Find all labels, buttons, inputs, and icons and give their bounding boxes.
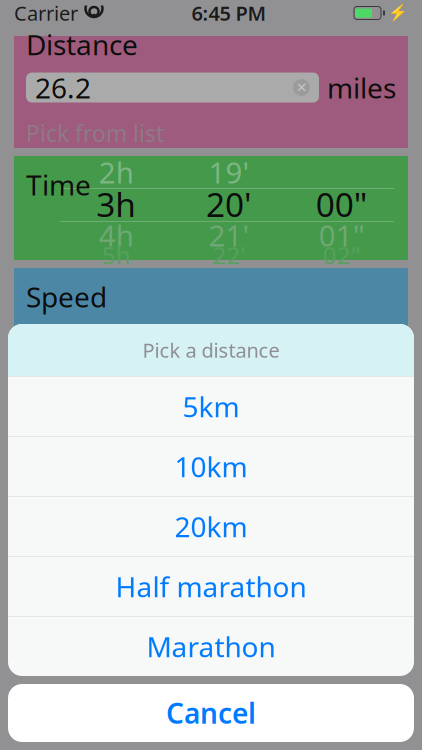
staticText: 21'	[208, 215, 249, 254]
staticText: 2h	[99, 152, 134, 191]
staticText: Pick a distance	[142, 337, 279, 363]
staticText: Speed	[26, 278, 107, 315]
staticText: Time	[26, 166, 91, 203]
staticText: 02"	[323, 239, 361, 271]
button[interactable]: Pick from list	[14, 106, 164, 160]
staticText: 4h	[99, 215, 134, 254]
staticText: Carrier	[14, 0, 78, 26]
staticText: Pick from list	[26, 118, 164, 148]
staticText: 22'	[212, 239, 245, 271]
staticText: 5h	[102, 239, 131, 271]
staticText: 3h	[96, 182, 136, 226]
staticText: 6:45 PM	[191, 0, 266, 26]
staticText: 26.2	[35, 69, 91, 106]
staticText: ⚡	[388, 4, 408, 22]
button[interactable]: Marathon	[8, 617, 414, 676]
staticText: 7.86 mph	[255, 327, 396, 370]
staticText: Half marathon	[115, 568, 306, 605]
button[interactable]: 20km	[8, 497, 414, 556]
staticText: miles	[327, 69, 396, 106]
button[interactable]: 5km	[8, 377, 414, 436]
staticText: 00"	[316, 182, 368, 226]
staticText: 19'	[208, 152, 249, 191]
staticText: 10km	[174, 448, 247, 485]
staticText: 01"	[319, 215, 365, 254]
staticText: ✕	[296, 80, 307, 95]
button[interactable]: Cancel	[8, 684, 414, 742]
staticText: Marathon	[146, 628, 275, 665]
staticText: Cancel	[166, 694, 256, 732]
staticText: 5km	[182, 388, 239, 425]
button[interactable]: 26.2	[26, 72, 319, 102]
button[interactable]: 10km	[8, 437, 414, 496]
staticText: 20'	[206, 182, 252, 226]
staticText: 20km	[174, 508, 247, 545]
button[interactable]: Half marathon	[8, 557, 414, 616]
staticText: Distance	[26, 26, 138, 63]
